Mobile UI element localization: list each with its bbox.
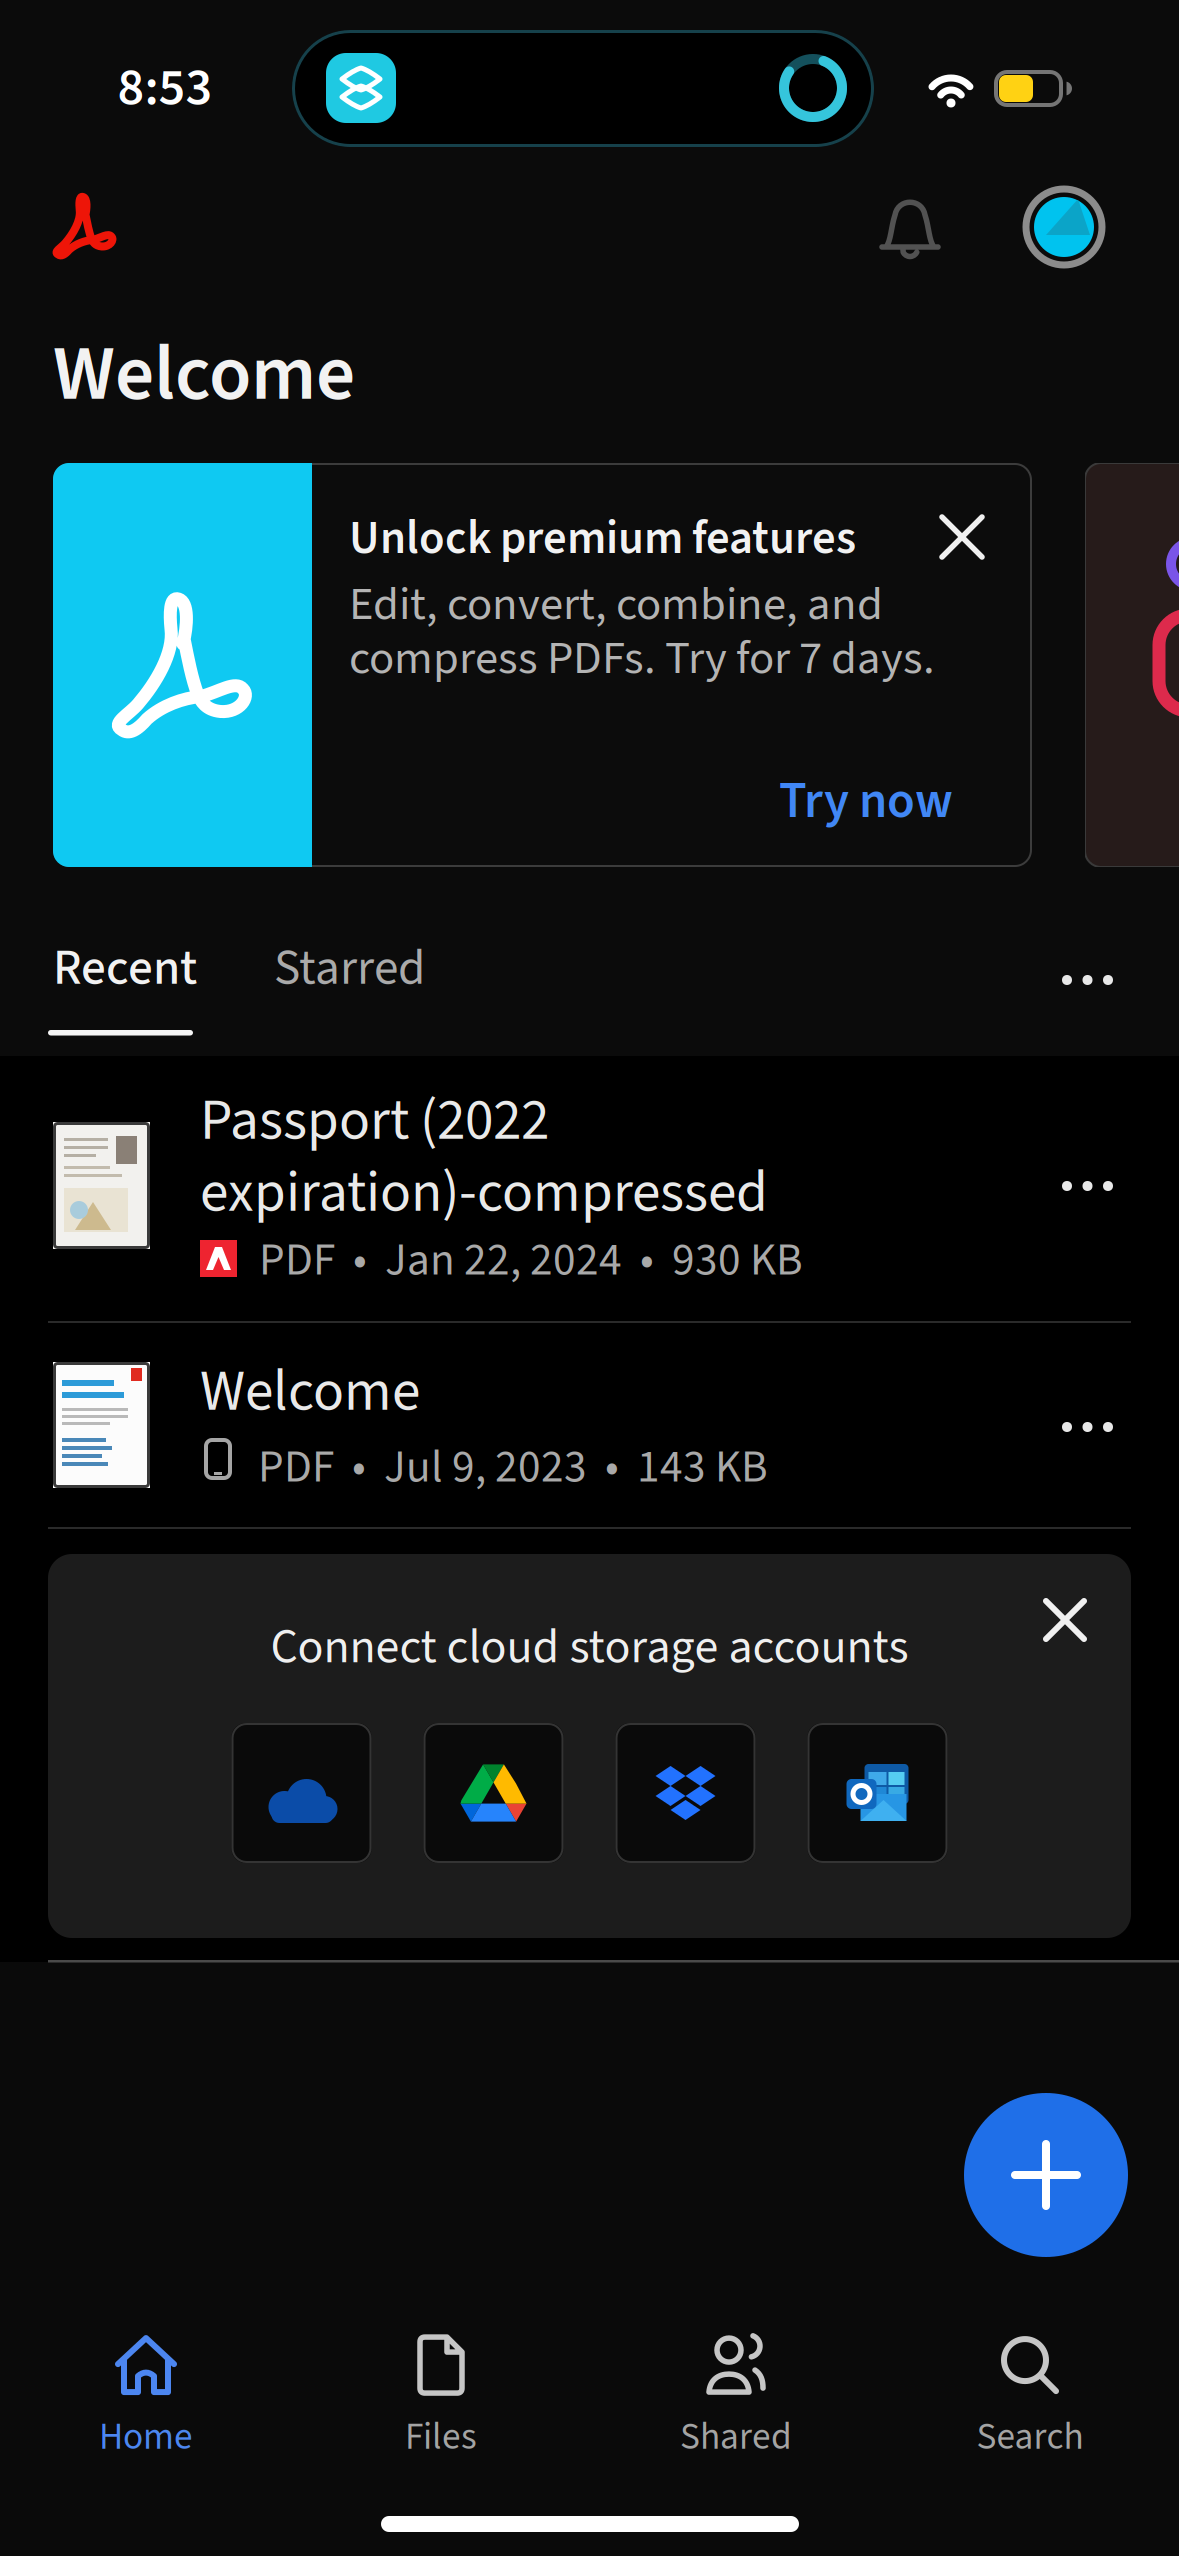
staticText: Search xyxy=(976,2411,1083,2463)
button[interactable]: OneDrive xyxy=(231,1723,371,1863)
button[interactable]: Starred xyxy=(274,934,425,1002)
button[interactable]: Home xyxy=(71,2328,221,2468)
staticText: Welcome xyxy=(53,321,355,428)
button[interactable]: More options xyxy=(1048,961,1127,999)
staticText: Passport (2022 xyxy=(200,1081,549,1161)
button[interactable]: Create xyxy=(964,2093,1128,2257)
button[interactable]: Google Drive xyxy=(423,1723,563,1863)
button[interactable]: Next promotion xyxy=(1085,463,1179,867)
button[interactable]: Dropbox xyxy=(615,1723,755,1863)
button[interactable]: Search xyxy=(955,2328,1105,2468)
staticText: Starred xyxy=(274,934,425,1002)
staticText: compress PDFs. Try for 7 days. xyxy=(349,626,935,691)
staticText: PDF • Jan 22, 2024 • 930 KB xyxy=(259,1229,803,1292)
staticText: Recent xyxy=(53,934,197,1002)
button[interactable]: More options for Welcome xyxy=(1048,1408,1127,1446)
button[interactable]: Dismiss xyxy=(930,505,994,569)
button[interactable]: Passport (2022 xyxy=(0,1056,1179,1321)
button[interactable]: Recent xyxy=(48,934,193,1036)
staticText: Files xyxy=(405,2411,477,2463)
staticText: Try now xyxy=(779,766,953,836)
button[interactable]: Live Activity xyxy=(326,53,396,123)
staticText: 8:53 xyxy=(117,52,212,124)
button[interactable]: Profile xyxy=(1021,184,1107,270)
staticText: Welcome xyxy=(200,1352,420,1432)
button[interactable]: Dismiss xyxy=(1034,1589,1096,1651)
staticText: Unlock premium features xyxy=(349,506,856,571)
button[interactable]: Shared xyxy=(661,2328,811,2468)
staticText: Edit, convert, combine, and xyxy=(349,572,883,637)
button[interactable]: Try now xyxy=(713,766,953,836)
button[interactable]: Outlook xyxy=(807,1723,947,1863)
staticText: expiration)-compressed xyxy=(200,1153,768,1233)
staticText: Shared xyxy=(680,2411,792,2463)
button[interactable]: More options for Passport xyxy=(1048,1167,1127,1205)
button[interactable]: Notifications xyxy=(878,194,942,262)
staticText: PDF • Jul 9, 2023 • 143 KB xyxy=(258,1436,768,1499)
staticText: Home xyxy=(99,2411,193,2463)
button[interactable]: Welcome xyxy=(0,1323,1179,1528)
button[interactable]: Unlock premium features xyxy=(53,463,1032,867)
staticText: Connect cloud storage accounts xyxy=(270,1614,908,1681)
button[interactable]: Files xyxy=(366,2328,516,2468)
